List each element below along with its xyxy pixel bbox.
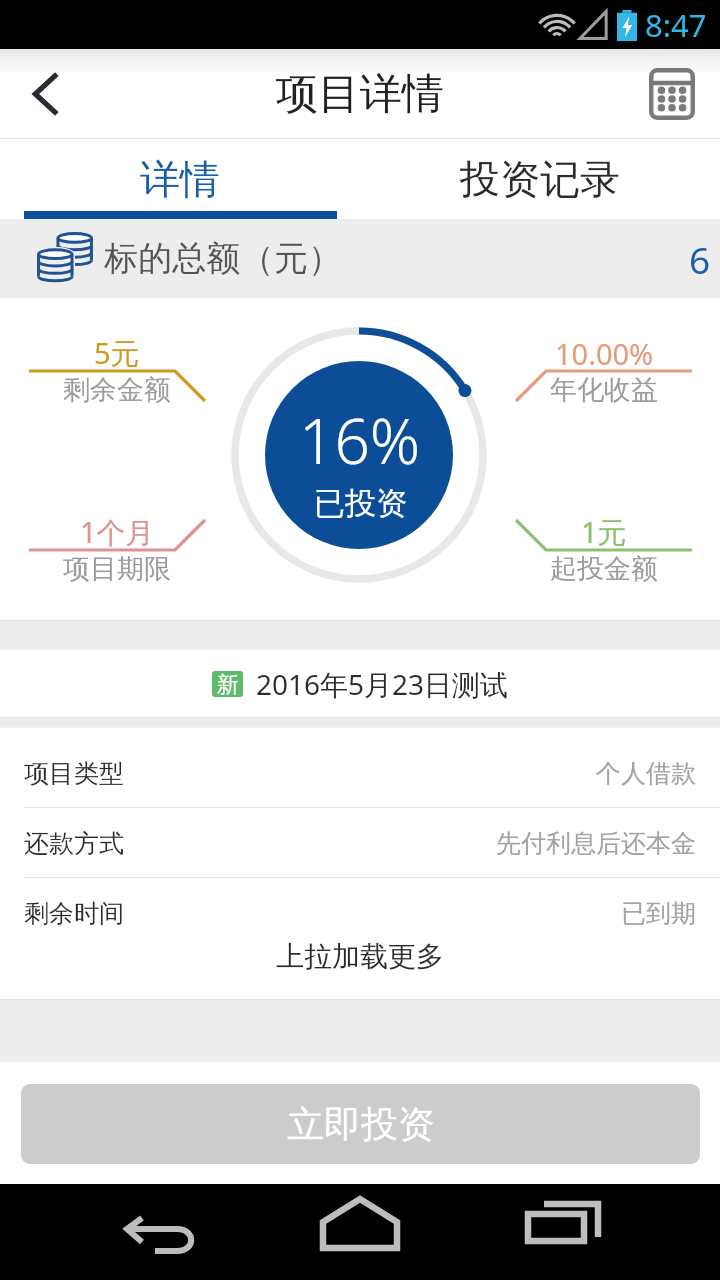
button[interactable]: 投资记录 [360, 139, 720, 219]
staticText: 标的总额（元） [104, 237, 342, 280]
button[interactable]: Home [310, 1195, 410, 1269]
staticText: 2016年5月23日测试 [256, 665, 509, 703]
staticText: 6 [689, 234, 711, 284]
staticText: 年化收益 [550, 373, 658, 407]
staticText: 10.00% [555, 334, 654, 373]
staticText: 16% [299, 398, 421, 482]
staticText: 已到期 [621, 898, 696, 929]
button[interactable]: Back [110, 1195, 210, 1269]
staticText: 项目期限 [63, 552, 171, 586]
staticText: 先付利息后还本金 [496, 828, 696, 859]
staticText: 8:47 [645, 4, 707, 46]
staticText: 新 [217, 671, 239, 697]
button[interactable]: Recent apps [510, 1195, 610, 1269]
staticText: 上拉加载更多 [276, 939, 444, 974]
button[interactable]: Back [0, 49, 90, 139]
staticText: 5元 [94, 333, 140, 373]
staticText: 已投资 [314, 484, 407, 523]
button[interactable]: 立即投资 [21, 1084, 700, 1164]
staticText: 投资记录 [460, 154, 620, 204]
staticText: 剩余金额 [63, 373, 171, 407]
staticText: 还款方式 [24, 828, 124, 859]
staticText: 项目详情 [276, 68, 444, 121]
staticText: 个人借款 [596, 758, 696, 789]
staticText: 1元 [581, 512, 627, 552]
staticText: 立即投资 [287, 1101, 435, 1148]
staticText: 起投金额 [550, 552, 658, 586]
staticText: 详情 [140, 154, 220, 204]
staticText: 剩余时间 [24, 898, 124, 929]
staticText: 项目类型 [24, 758, 124, 789]
button[interactable]: 详情 [0, 139, 360, 219]
button[interactable]: Calculator [624, 49, 720, 139]
staticText: 1个月 [80, 512, 155, 552]
